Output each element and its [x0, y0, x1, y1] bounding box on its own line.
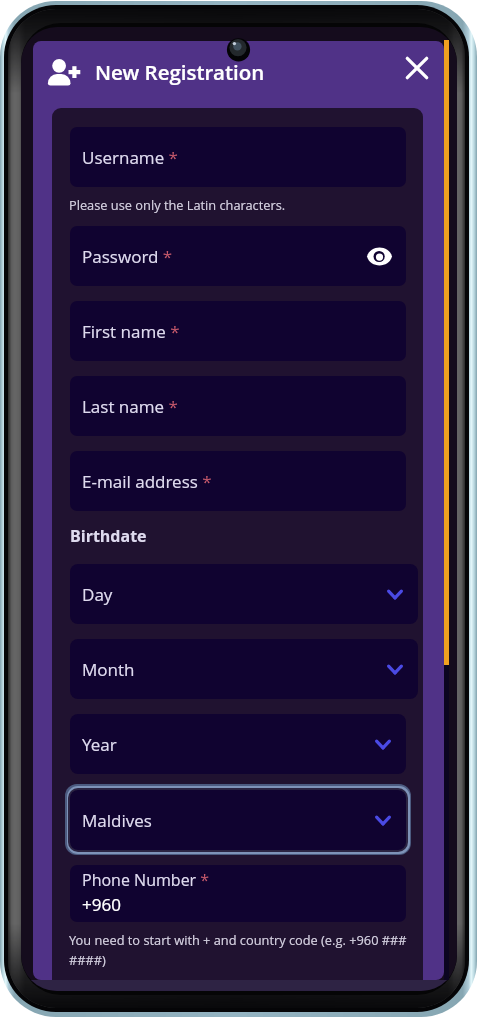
button[interactable]: Month [70, 639, 418, 699]
staticText: E-mail address * [82, 470, 212, 493]
button[interactable]: Close [396, 47, 438, 89]
staticText: Month [82, 658, 135, 681]
staticText: +960 [82, 893, 121, 916]
button[interactable]: Username * [70, 127, 406, 187]
staticText: Last name * [82, 395, 178, 418]
button[interactable]: Day [70, 564, 418, 624]
staticText: Phone Number * [82, 869, 210, 891]
staticText: Day [82, 583, 113, 606]
staticText: Username * [82, 146, 178, 169]
staticText: Year [82, 733, 117, 756]
button[interactable]: Password * [70, 226, 406, 286]
staticText: Birthdate [70, 525, 147, 547]
staticText: Password * [82, 245, 173, 268]
button[interactable]: Maldives [70, 790, 406, 850]
staticText: New Registration [95, 58, 265, 86]
button[interactable]: Last name * [70, 376, 406, 436]
staticText: You need to start with + and country cod… [69, 931, 411, 968]
staticText: Please use only the Latin characters. [69, 196, 286, 213]
button[interactable]: First name * [70, 301, 406, 361]
staticText: First name * [82, 320, 180, 343]
button[interactable]: Show password [364, 244, 394, 268]
button[interactable]: Year [70, 714, 406, 774]
button[interactable]: Phone Number * [70, 865, 406, 922]
button[interactable]: E-mail address * [70, 451, 406, 511]
staticText: Maldives [82, 809, 152, 832]
button[interactable]: Add new user [44, 53, 88, 97]
